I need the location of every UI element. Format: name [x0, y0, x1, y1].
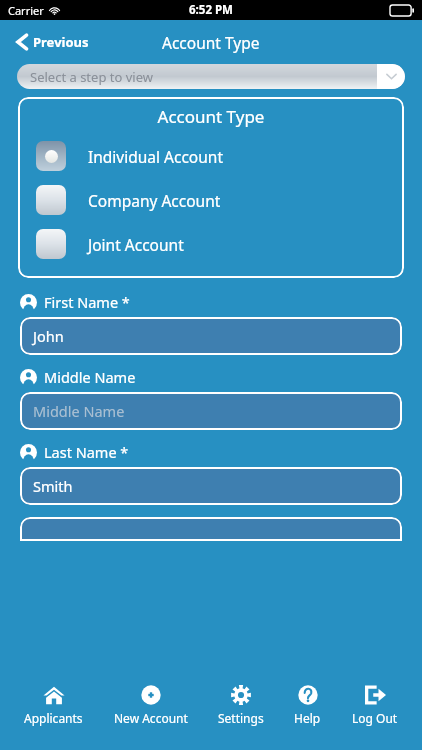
button[interactable]: Individual Account [18, 134, 404, 178]
staticText: Carrier [8, 3, 44, 18]
button[interactable]: John [20, 317, 402, 355]
staticText: Middle Name [44, 367, 136, 387]
button[interactable]: Select a step to view [17, 64, 405, 89]
staticText: Individual Account [88, 146, 223, 167]
staticText: Log Out [352, 710, 398, 726]
staticText: Joint Account [88, 234, 184, 255]
staticText: Last Name * [44, 442, 129, 462]
button[interactable]: Log Out [346, 682, 404, 728]
staticText: Middle Name [33, 401, 125, 421]
staticText: New Account [114, 710, 188, 726]
button[interactable]: Middle Name [20, 392, 402, 430]
staticText: Company Account [88, 190, 221, 211]
staticText: Account Type [162, 32, 260, 53]
staticText: First Name * [44, 292, 130, 312]
button[interactable]: Settings [212, 682, 270, 728]
staticText: John [33, 326, 64, 346]
button[interactable]: New Account [108, 682, 194, 728]
staticText: Applicants [24, 710, 83, 726]
button[interactable]: Smith [20, 467, 402, 505]
button[interactable]: Previous [0, 28, 99, 56]
button[interactable] [20, 517, 402, 541]
staticText: Previous [33, 33, 89, 51]
button[interactable]: Applicants [18, 682, 89, 728]
staticText: Help [294, 710, 321, 726]
staticText: Smith [33, 476, 73, 496]
staticText: Account Type [18, 105, 404, 128]
staticText: 6:52 PM [189, 2, 233, 18]
button[interactable]: Company Account [18, 178, 404, 222]
staticText: Select a step to view [30, 68, 153, 86]
button[interactable]: Joint Account [18, 222, 404, 266]
button[interactable]: Help [288, 682, 327, 728]
staticText: Settings [218, 710, 264, 726]
